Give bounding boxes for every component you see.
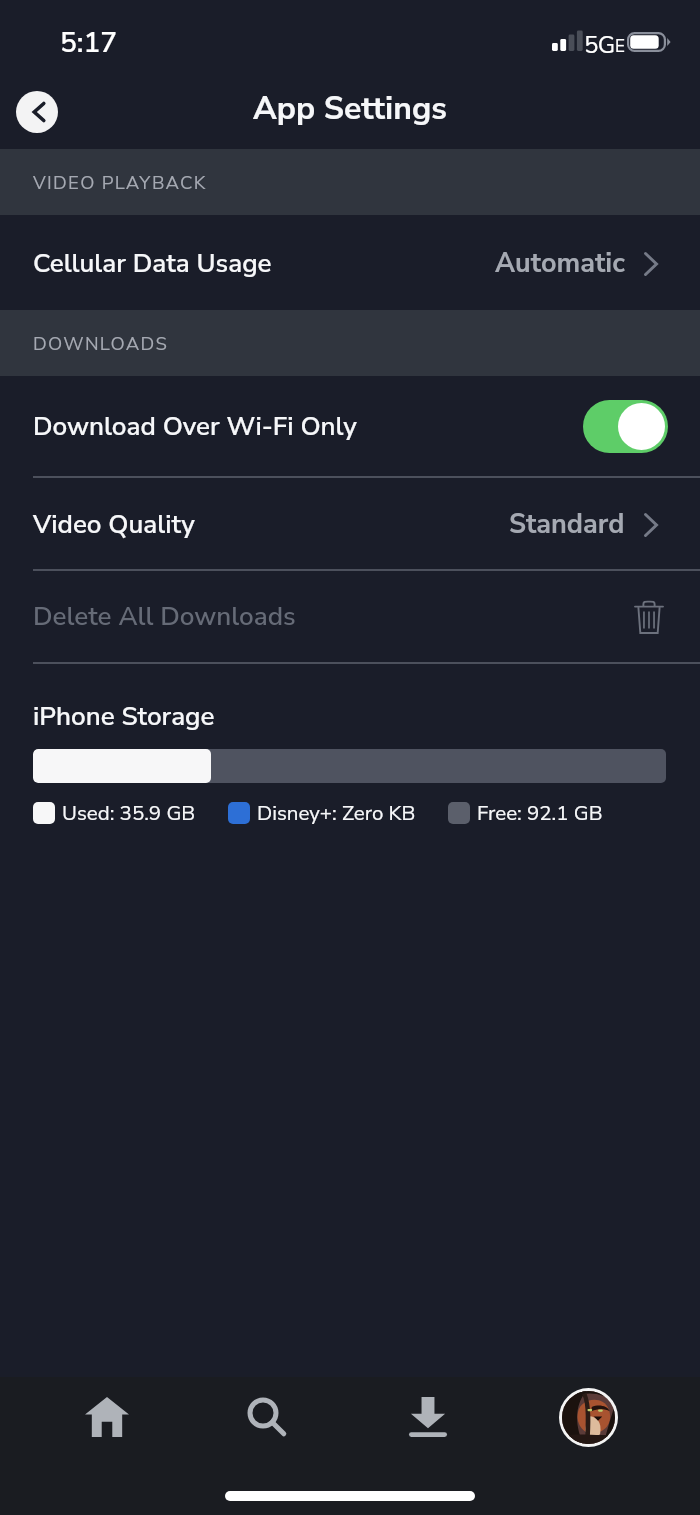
staticText: Used: 35.9 GB xyxy=(62,799,196,827)
staticText: Video Quality xyxy=(33,507,195,542)
staticText: VIDEO PLAYBACK xyxy=(33,170,207,195)
staticText: Download Over Wi-Fi Only xyxy=(33,409,357,444)
button[interactable]: Home xyxy=(27,1377,187,1457)
staticText: Delete All Downloads xyxy=(33,599,296,634)
button[interactable]: Downloads xyxy=(347,1377,508,1457)
staticText: 5:17 xyxy=(60,24,118,62)
staticText: iPhone Storage xyxy=(33,699,215,734)
button[interactable]: Cellular Data Usage xyxy=(0,215,700,310)
button[interactable]: Video Quality xyxy=(0,478,700,569)
staticText: Standard xyxy=(509,506,625,543)
staticText: Cellular Data Usage xyxy=(33,246,272,281)
button[interactable]: Back xyxy=(16,91,58,133)
staticText: Free: 92.1 GB xyxy=(477,799,603,827)
staticText: 5G xyxy=(584,29,615,62)
button[interactable]: Search xyxy=(187,1377,347,1457)
button[interactable]: Delete All Downloads xyxy=(0,571,700,662)
staticText: E xyxy=(615,35,625,58)
staticText: Disney+: Zero KB xyxy=(257,799,416,827)
staticText: App Settings xyxy=(253,87,447,131)
staticText: DOWNLOADS xyxy=(33,331,169,356)
button[interactable]: Download Over Wi-Fi Only toggle xyxy=(583,400,668,453)
staticText: Automatic xyxy=(495,245,625,282)
button[interactable]: Profile xyxy=(508,1377,669,1457)
button[interactable]: Download Over Wi-Fi Only xyxy=(0,376,700,476)
